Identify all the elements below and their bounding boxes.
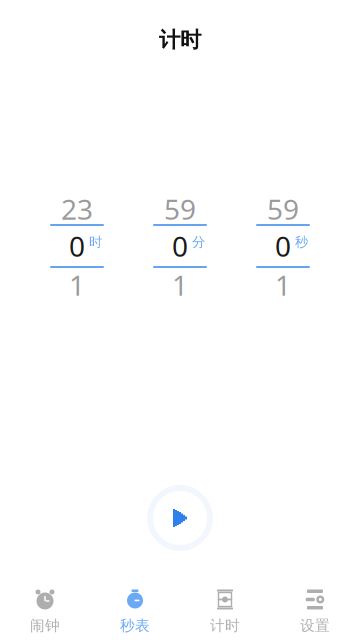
staticText: 0 (275, 227, 291, 265)
staticText: 计时 (159, 27, 201, 53)
staticText: 设置 (300, 616, 330, 634)
staticText: 23 (61, 190, 93, 228)
staticText: 分 (192, 234, 205, 250)
button[interactable]: 设置 (270, 584, 360, 638)
staticText: 时 (89, 234, 102, 250)
staticText: 1 (69, 266, 85, 304)
staticText: 59 (267, 190, 299, 228)
button[interactable]: 闹钟 (0, 584, 90, 638)
button[interactable]: 秒表 (90, 584, 180, 638)
staticText: 1 (275, 266, 291, 304)
staticText: 59 (164, 190, 196, 228)
staticText: 1 (172, 266, 188, 304)
staticText: 秒表 (120, 616, 150, 634)
staticText: 0 (172, 227, 188, 265)
staticText: 0 (69, 227, 85, 265)
staticText: 秒 (295, 234, 308, 250)
staticText: 计时 (210, 616, 240, 634)
staticText: 闹钟 (30, 616, 60, 634)
button[interactable]: 计时 (180, 584, 270, 638)
button[interactable]: 开始 (144, 482, 216, 554)
